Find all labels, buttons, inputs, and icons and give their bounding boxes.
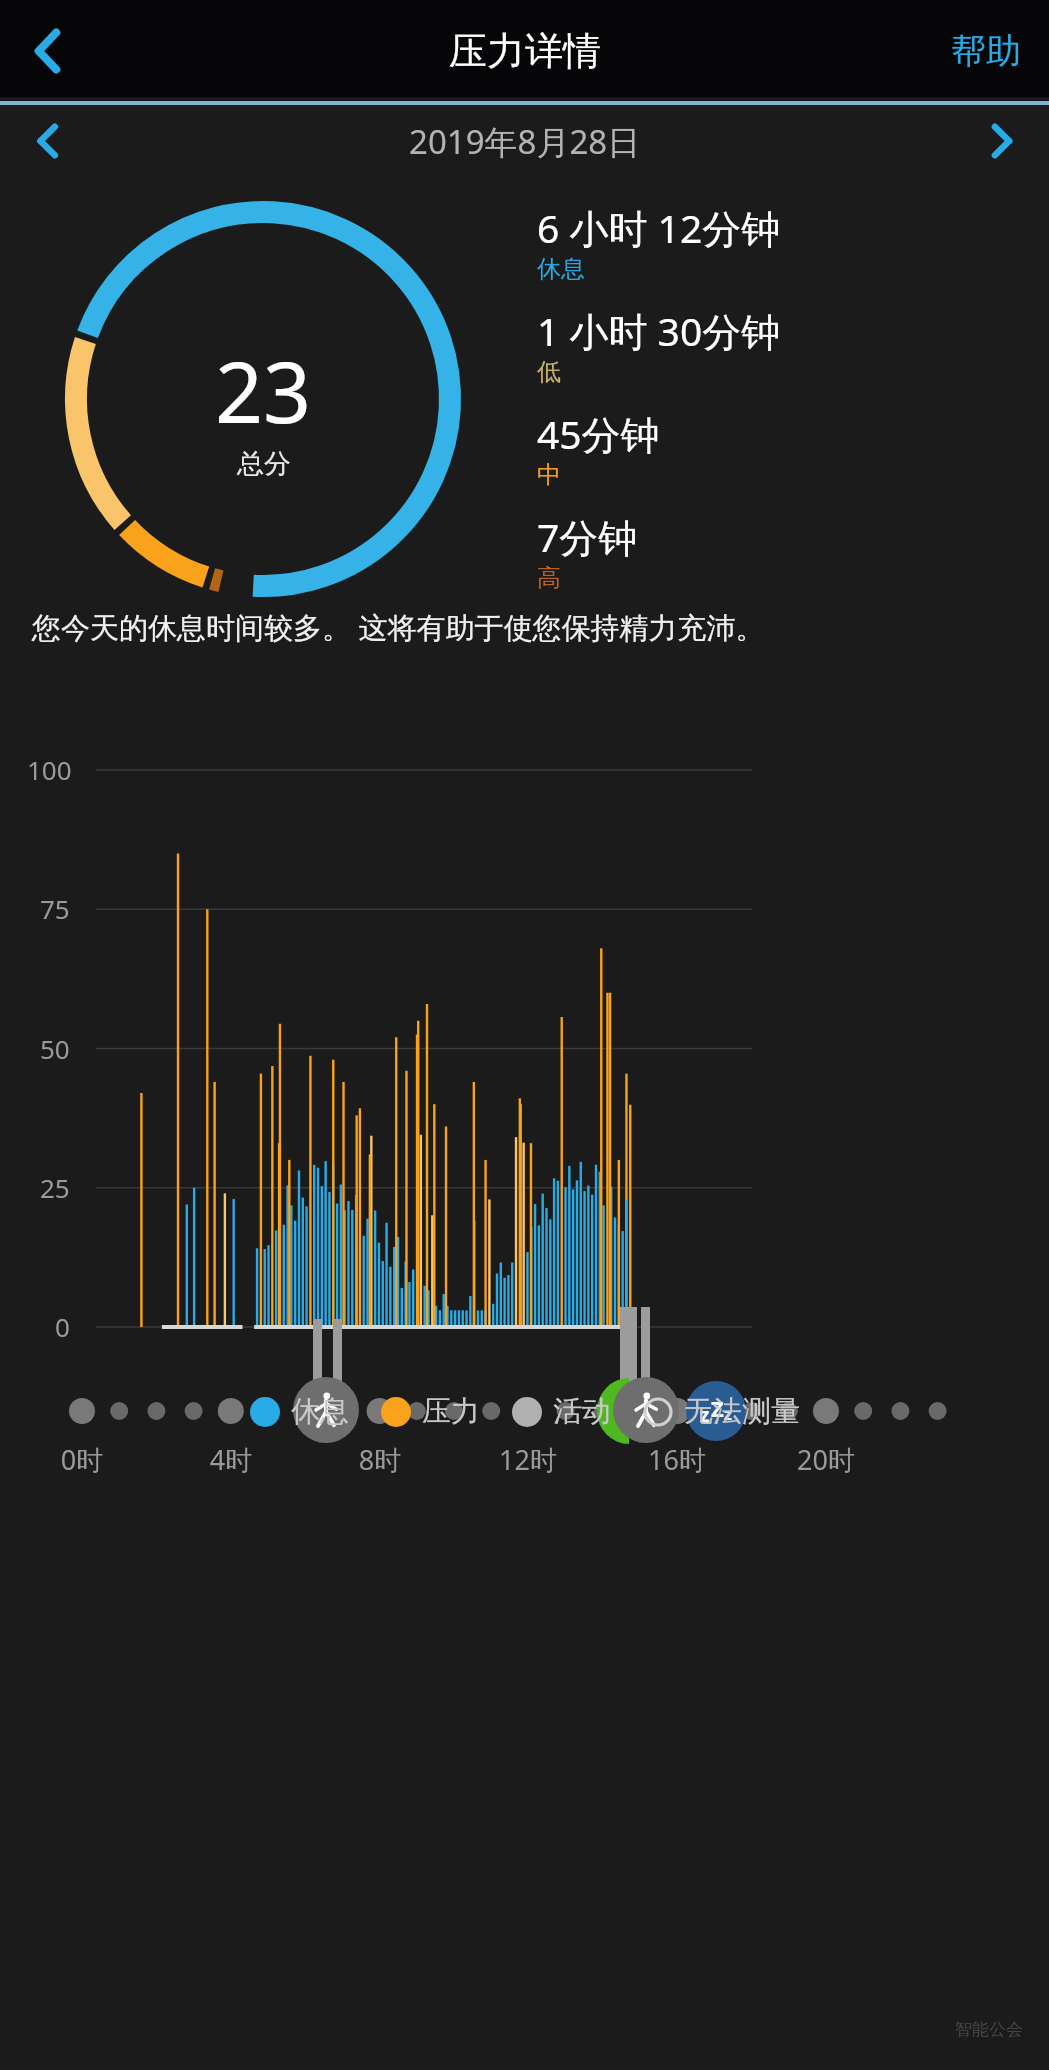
staticText: 50 <box>40 1031 70 1066</box>
staticText: 总分 <box>237 447 291 481</box>
staticText: Z <box>711 1393 724 1423</box>
staticText: 休息 <box>537 254 585 284</box>
staticText: 12时 <box>483 1441 573 1478</box>
staticText: 75 <box>40 891 70 926</box>
staticText: 帮助 <box>951 29 1021 73</box>
button[interactable]: 活动 <box>512 1393 611 1430</box>
staticText: 您今天的休息时间较多。 这将有助于使您保持精力充沛。 <box>32 607 765 647</box>
staticText: 休息 <box>291 1393 349 1430</box>
staticText: 活动 <box>553 1393 611 1430</box>
button[interactable]: 压力 <box>381 1393 480 1430</box>
button[interactable]: Back <box>0 0 96 101</box>
button[interactable]: 休息 <box>250 1393 349 1430</box>
staticText: 25 <box>40 1170 70 1205</box>
staticText: 高 <box>537 563 561 593</box>
button[interactable]: Next day <box>953 105 1049 177</box>
staticText: 4时 <box>186 1441 276 1478</box>
button[interactable]: 帮助 <box>943 19 1029 83</box>
staticText: 2019年8月28日 <box>409 119 641 164</box>
button[interactable]: Sleep <box>686 1381 746 1441</box>
staticText: 压力 <box>422 1393 480 1430</box>
staticText: 0时 <box>37 1441 127 1478</box>
button[interactable]: Previous day <box>0 105 96 177</box>
button[interactable]: Activity <box>613 1377 679 1443</box>
staticText: z <box>724 1403 732 1425</box>
staticText: 中 <box>537 460 561 490</box>
staticText: z <box>700 1402 710 1428</box>
staticText: 无法测量 <box>684 1393 800 1430</box>
staticText: 20时 <box>781 1441 871 1478</box>
staticText: 智能公会 <box>955 2019 1023 2040</box>
staticText: 低 <box>537 357 561 387</box>
staticText: 16时 <box>632 1441 722 1478</box>
staticText: 0 <box>55 1309 70 1344</box>
staticText: 100 <box>27 752 72 787</box>
staticText: 23 <box>215 333 312 447</box>
button[interactable]: Activity <box>293 1377 359 1443</box>
staticText: 45分钟 <box>537 407 660 460</box>
staticText: 7分钟 <box>537 510 638 563</box>
button[interactable]: 无法测量 <box>643 1393 800 1430</box>
staticText: 压力详情 <box>449 27 601 75</box>
staticText: 8时 <box>335 1441 425 1478</box>
staticText: 1 小时 30分钟 <box>537 304 781 357</box>
staticText: 6 小时 12分钟 <box>537 201 781 254</box>
